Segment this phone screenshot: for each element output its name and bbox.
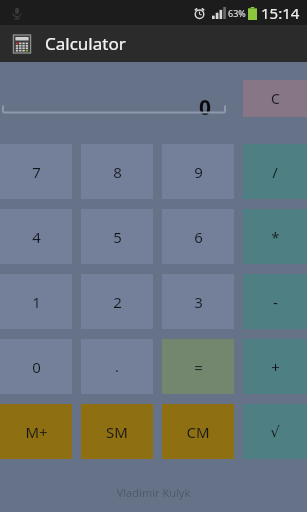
button[interactable]: 5 — [81, 209, 153, 264]
staticText: 9 — [194, 162, 203, 182]
staticText: 63% — [228, 7, 246, 19]
staticText: 0 — [32, 357, 41, 377]
staticText: C — [271, 89, 280, 108]
button[interactable]: CM — [162, 404, 234, 459]
staticText: 7 — [32, 162, 41, 182]
button[interactable]: 9 — [162, 144, 234, 199]
button[interactable]: 7 — [0, 144, 72, 199]
staticText: Vladimir Kulyk — [0, 485, 307, 500]
staticText: 4 — [32, 227, 41, 247]
button[interactable]: / — [243, 144, 307, 199]
staticText: . — [115, 357, 119, 376]
button[interactable]: 1 — [0, 274, 72, 329]
staticText: / — [272, 162, 278, 182]
button[interactable]: 2 — [81, 274, 153, 329]
staticText: 0 — [199, 93, 212, 117]
staticText: 15:14 — [261, 3, 300, 23]
staticText: 8 — [113, 162, 122, 182]
button[interactable]: √ — [243, 404, 307, 459]
staticText: + — [271, 357, 280, 377]
button[interactable]: 0 — [0, 339, 72, 394]
staticText: 1 — [32, 292, 41, 312]
button[interactable]: 3 — [162, 274, 234, 329]
staticText: 6 — [194, 227, 203, 247]
button[interactable]: 6 — [162, 209, 234, 264]
staticText: 3 — [194, 292, 203, 312]
staticText: Calculator — [45, 32, 126, 55]
staticText: 5 — [113, 227, 122, 247]
button[interactable]: SM — [81, 404, 153, 459]
staticText: * — [271, 227, 280, 247]
button[interactable]: * — [243, 209, 307, 264]
staticText: = — [194, 357, 203, 377]
staticText: CM — [186, 422, 210, 442]
staticText: SM — [106, 422, 128, 442]
button[interactable]: = — [162, 339, 234, 394]
staticText: √ — [270, 423, 280, 440]
staticText: - — [273, 292, 278, 312]
button[interactable]: M+ — [0, 404, 72, 459]
button[interactable]: + — [243, 339, 307, 394]
button[interactable]: 4 — [0, 209, 72, 264]
button[interactable]: - — [243, 274, 307, 329]
button[interactable]: C — [243, 80, 307, 117]
staticText: M+ — [25, 422, 48, 442]
staticText: 2 — [113, 292, 122, 312]
button[interactable]: 8 — [81, 144, 153, 199]
